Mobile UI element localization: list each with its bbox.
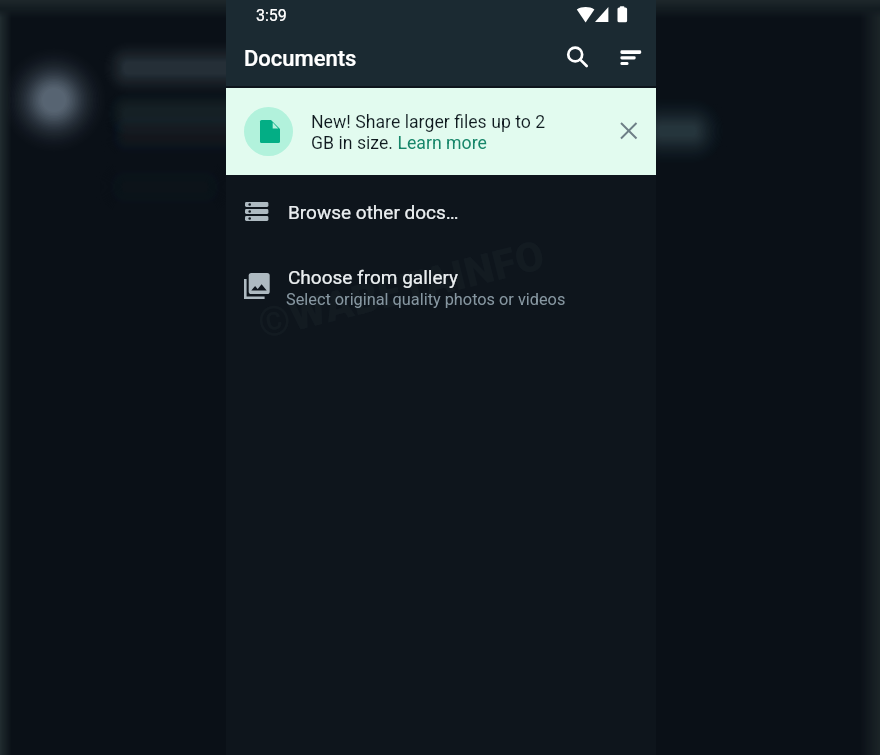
staticText: Select original quality photos or videos <box>286 290 566 309</box>
button[interactable]: Browse other docs… <box>226 181 656 243</box>
button[interactable]: Close <box>607 109 651 153</box>
staticText: ©WABETAINFO <box>253 231 550 349</box>
button[interactable]: Search <box>554 34 602 82</box>
staticText: Choose from gallery <box>288 266 459 288</box>
staticText: Browse other docs… <box>288 201 459 223</box>
button[interactable]: Choose from gallery <box>226 255 656 317</box>
staticText: New! Share larger files up to 2 GB in si… <box>311 112 555 154</box>
button[interactable]: New! Share larger files up to 2 GB in si… <box>226 88 656 175</box>
staticText: 3:59 <box>256 6 287 25</box>
staticText: Documents <box>244 46 357 72</box>
button[interactable]: Sort <box>607 35 655 83</box>
